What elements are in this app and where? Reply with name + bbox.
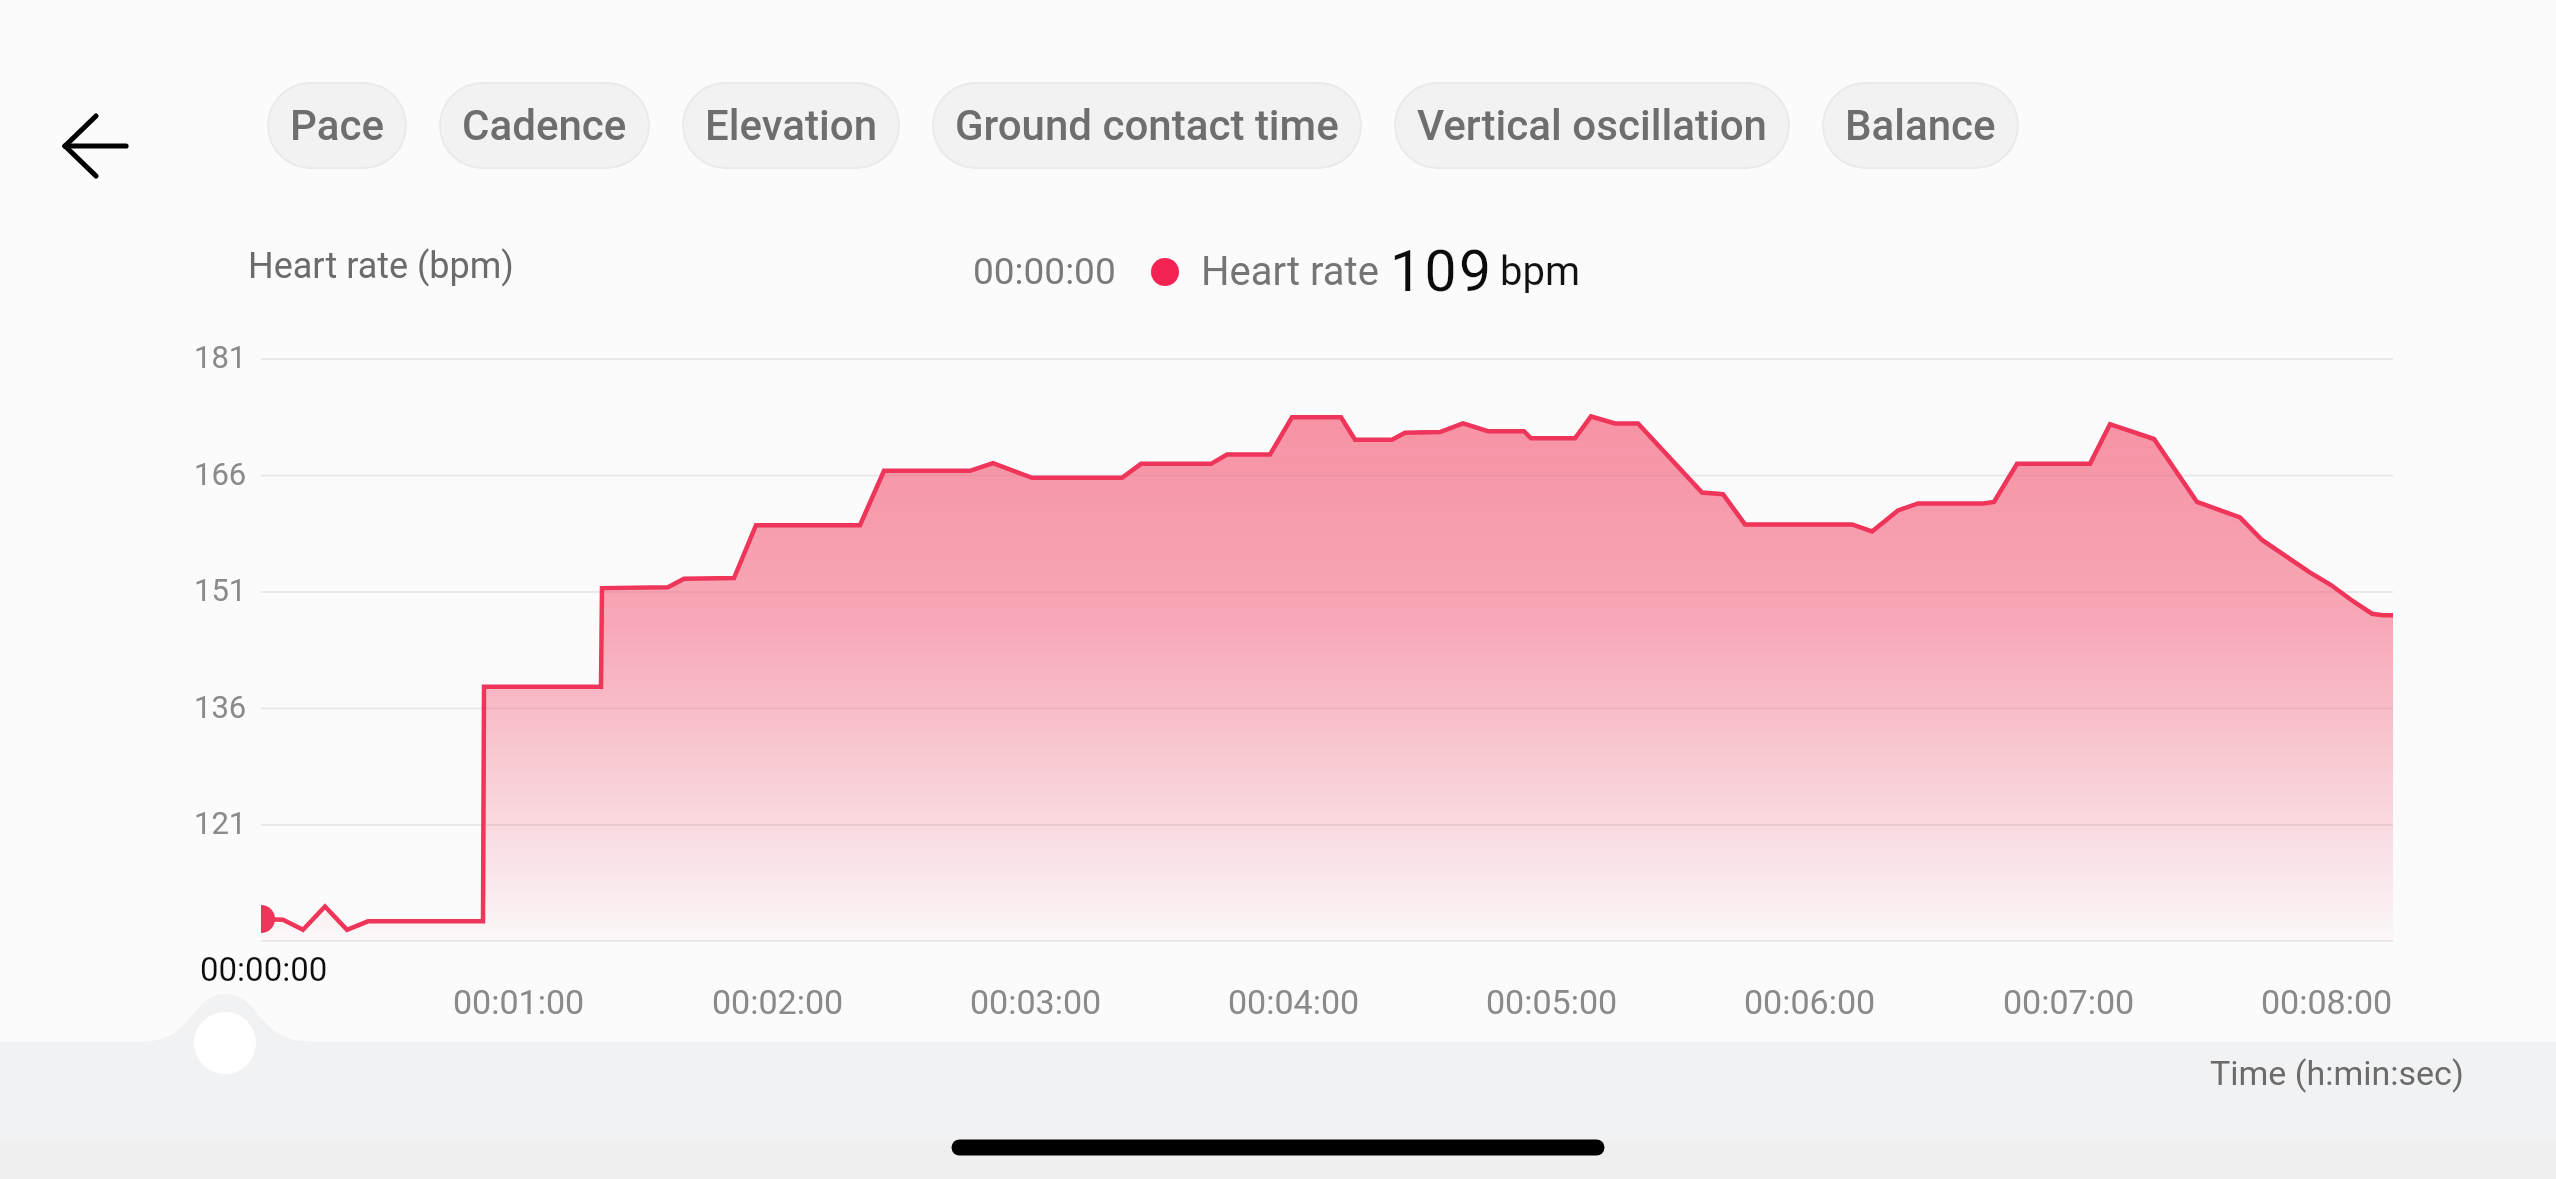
- staticText: 00:01:00: [453, 982, 585, 1022]
- staticText: 181: [194, 339, 247, 375]
- button[interactable]: Vertical oscillation: [1394, 82, 1790, 169]
- staticText: 00:00:00: [200, 950, 328, 989]
- button[interactable]: Timeline scrubber: [194, 1012, 256, 1074]
- staticText: bpm: [1500, 248, 1580, 295]
- staticText: 121: [194, 805, 247, 841]
- staticText: Heart rate (bpm): [248, 245, 514, 287]
- staticText: Ground contact time: [955, 101, 1339, 150]
- button[interactable]: Balance: [1822, 82, 2019, 169]
- staticText: 00:00:00: [973, 250, 1116, 293]
- staticText: Vertical oscillation: [1417, 101, 1767, 150]
- staticText: 00:02:00: [712, 982, 844, 1022]
- staticText: 00:08:00: [2261, 982, 2393, 1022]
- staticText: Heart rate: [1201, 248, 1379, 295]
- staticText: Pace: [290, 101, 384, 150]
- button[interactable]: Back: [35, 96, 155, 196]
- button[interactable]: Elevation: [682, 82, 900, 169]
- staticText: 136: [194, 689, 247, 725]
- button[interactable]: Ground contact time: [932, 82, 1362, 169]
- staticText: 00:05:00: [1486, 982, 1618, 1022]
- button[interactable]: Pace: [267, 82, 407, 169]
- staticText: 00:03:00: [970, 982, 1102, 1022]
- staticText: 00:06:00: [1744, 982, 1876, 1022]
- staticText: Balance: [1845, 101, 1996, 150]
- staticText: 109: [1390, 238, 1494, 305]
- button[interactable]: Cadence: [439, 82, 650, 169]
- staticText: Time (h:min:sec): [2210, 1053, 2464, 1093]
- staticText: 151: [194, 572, 247, 608]
- staticText: 00:04:00: [1228, 982, 1360, 1022]
- staticText: 00:07:00: [2003, 982, 2135, 1022]
- staticText: 166: [194, 456, 247, 492]
- staticText: Cadence: [462, 101, 627, 150]
- staticText: Elevation: [705, 101, 877, 150]
